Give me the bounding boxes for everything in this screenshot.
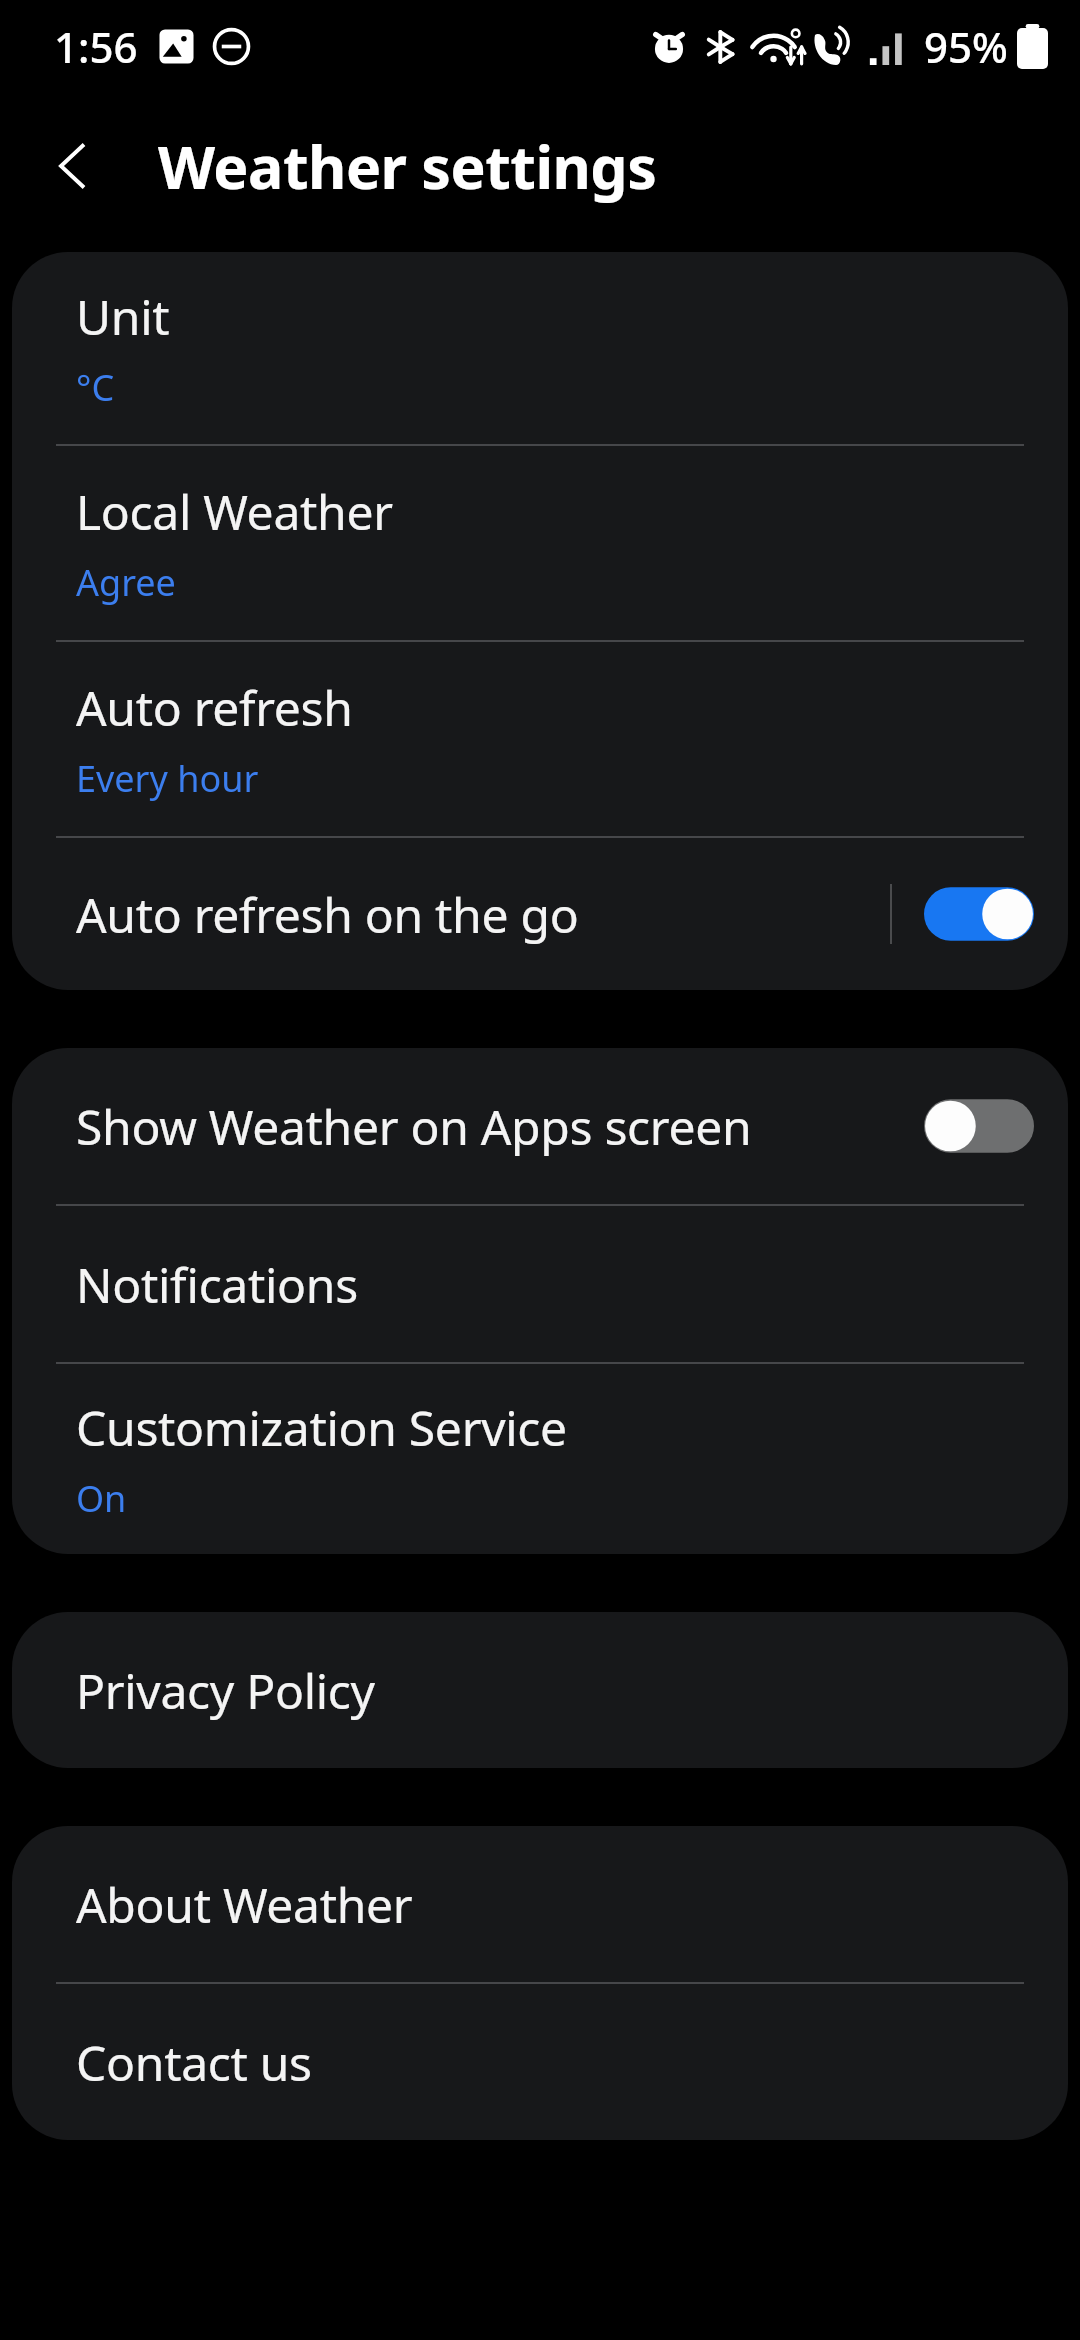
staticText: About Weather	[76, 1872, 413, 1937]
button[interactable]: Auto refresh	[12, 642, 1068, 836]
button[interactable]: Notifications	[12, 1206, 1068, 1362]
button[interactable]: About Weather	[12, 1826, 1068, 1982]
button[interactable]: Unit	[12, 252, 1068, 444]
staticText: °C	[76, 363, 115, 412]
button[interactable]: Back	[34, 127, 112, 205]
staticText: Customization Service	[76, 1395, 567, 1460]
staticText: Unit	[76, 284, 170, 349]
button[interactable]: Show Weather on Apps screen	[924, 1097, 1034, 1155]
button[interactable]: Privacy Policy	[12, 1612, 1068, 1768]
staticText: 1:56	[54, 18, 138, 75]
button[interactable]: Auto refresh on the go	[924, 885, 1034, 943]
staticText: 95%	[924, 18, 1008, 75]
staticText: Agree	[76, 558, 176, 607]
staticText: Notifications	[76, 1252, 358, 1317]
staticText: Every hour	[76, 754, 259, 803]
staticText: Weather settings	[158, 126, 657, 206]
button[interactable]: Auto refresh on the go	[12, 838, 1068, 990]
button[interactable]: Show Weather on Apps screen	[12, 1048, 1068, 1204]
button[interactable]: Contact us	[12, 1984, 1068, 2140]
staticText: Privacy Policy	[76, 1658, 375, 1723]
button[interactable]: Local Weather	[12, 446, 1068, 640]
staticText: Auto refresh	[76, 675, 353, 740]
staticText: Contact us	[76, 2030, 312, 2095]
staticText: Local Weather	[76, 479, 393, 544]
button[interactable]: Customization Service	[12, 1364, 1068, 1554]
staticText: On	[76, 1474, 127, 1523]
staticText: Auto refresh on the go	[76, 882, 579, 947]
staticText: Show Weather on Apps screen	[76, 1094, 752, 1159]
